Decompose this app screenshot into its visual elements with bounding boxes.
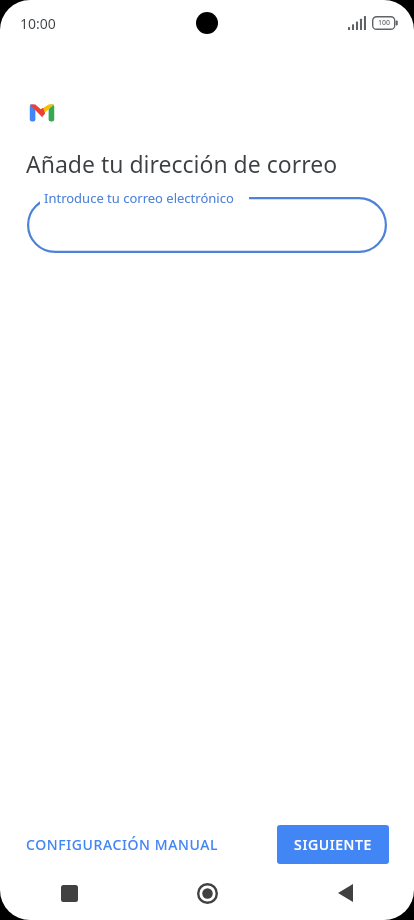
staticText: 10:00 [20, 14, 56, 33]
button[interactable]: Home [138, 866, 276, 920]
staticText: Introduce tu correo electrónico [44, 189, 234, 207]
button[interactable]: CONFIGURACIÓN MANUAL [14, 825, 231, 864]
button[interactable]: SIGUIENTE [277, 825, 389, 864]
button[interactable]: Recent apps [0, 866, 138, 920]
staticText: SIGUIENTE [294, 835, 372, 854]
button[interactable]: Introduce tu correo electrónico [27, 197, 387, 253]
staticText: 100 [378, 18, 391, 28]
staticText: CONFIGURACIÓN MANUAL [26, 835, 219, 854]
button[interactable]: Back [276, 866, 414, 920]
staticText: Añade tu dirección de correo [26, 148, 338, 179]
